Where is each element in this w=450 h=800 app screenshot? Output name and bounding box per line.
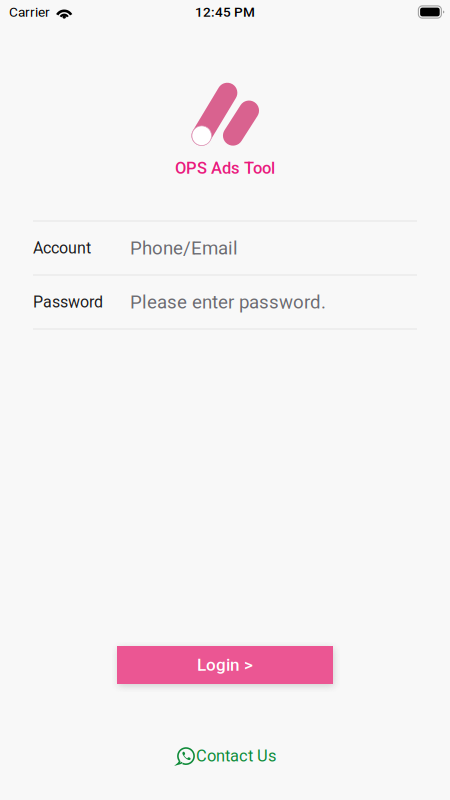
button[interactable]: Contact Us <box>172 743 276 768</box>
staticText: Phone/Email <box>130 237 238 259</box>
staticText: Carrier <box>9 4 50 20</box>
staticText: Login > <box>197 655 253 675</box>
staticText: Password <box>33 293 103 311</box>
button[interactable]: Login > <box>117 646 333 684</box>
staticText: Please enter password. <box>130 291 326 313</box>
staticText: Account <box>33 239 91 257</box>
staticText: 12:45 PM <box>195 4 255 20</box>
staticText: OPS Ads Tool <box>175 158 275 178</box>
staticText: Contact Us <box>196 746 276 766</box>
